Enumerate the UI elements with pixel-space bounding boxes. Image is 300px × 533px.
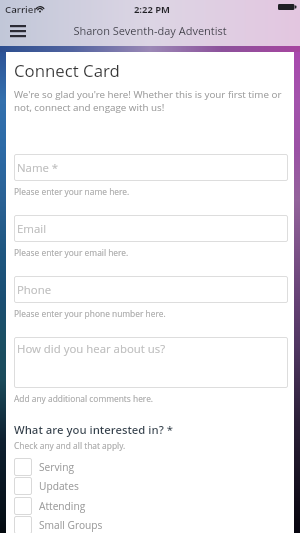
button[interactable]: Serving <box>14 457 288 477</box>
button[interactable]: Phone <box>14 276 288 303</box>
staticText: We're so glad you're here! Whether this … <box>14 88 282 114</box>
button[interactable]: Open navigation menu <box>5 19 30 43</box>
staticText: What are you interested in? * <box>14 422 173 437</box>
staticText: Check any and all that apply. <box>14 440 126 451</box>
staticText: 2:22 PM <box>134 3 170 16</box>
staticText: Carrier <box>5 3 38 16</box>
button[interactable]: Email <box>14 215 288 242</box>
button[interactable]: Updates <box>14 476 288 496</box>
staticText: Updates <box>39 479 79 493</box>
button[interactable]: Small Groups <box>14 515 288 533</box>
staticText: How did you hear about us? <box>17 341 166 357</box>
staticText: Connect Card <box>14 59 120 82</box>
button[interactable]: Attending <box>14 496 288 516</box>
button[interactable]: Name * <box>14 154 288 181</box>
staticText: Add any additional comments here. <box>14 393 154 404</box>
staticText: Small Groups <box>39 518 103 532</box>
staticText: Name * <box>17 160 59 176</box>
staticText: Attending <box>39 499 86 513</box>
staticText: Phone <box>17 282 52 298</box>
staticText: Serving <box>39 460 74 474</box>
button[interactable]: How did you hear about us? <box>14 337 288 388</box>
staticText: Please enter your name here. <box>14 186 130 197</box>
staticText: Sharon Seventh-day Adventist <box>73 23 227 38</box>
staticText: Email <box>17 221 47 237</box>
staticText: Please enter your phone number here. <box>14 308 166 319</box>
staticText: Please enter your email here. <box>14 247 129 258</box>
